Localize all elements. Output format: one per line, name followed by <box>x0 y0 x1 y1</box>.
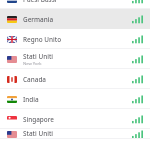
staticText: Canada <box>23 75 46 84</box>
staticText: Germania <box>23 15 54 24</box>
button[interactable]: Signal strength <box>132 55 143 64</box>
staticText: New York <box>23 61 42 67</box>
staticText: India <box>23 95 39 104</box>
button[interactable]: India <box>0 89 150 109</box>
staticText: Singapore <box>23 115 54 124</box>
button[interactable]: Regno Unito <box>0 29 150 49</box>
button[interactable]: Canada <box>0 69 150 89</box>
button[interactable]: Singapore <box>0 109 150 129</box>
button[interactable]: Signal strength <box>132 35 143 44</box>
button[interactable]: Signal strength <box>132 115 143 124</box>
button[interactable]: Signal strength <box>132 75 143 84</box>
button[interactable]: Signal strength <box>132 15 143 24</box>
button[interactable]: Stati Uniti <box>0 129 150 139</box>
button[interactable]: Germania <box>0 9 150 29</box>
staticText: Stati Uniti <box>23 129 54 138</box>
staticText: Paesi Bassi <box>23 0 57 4</box>
button[interactable]: Signal strength <box>132 130 143 139</box>
button[interactable]: Paesi Bassi <box>0 0 150 9</box>
button[interactable]: Stati Uniti <box>0 49 150 69</box>
button[interactable]: Signal strength <box>132 95 143 104</box>
staticText: Regno Unito <box>23 35 62 44</box>
button[interactable]: Signal strength <box>132 0 143 4</box>
staticText: Stati Uniti <box>23 52 54 61</box>
